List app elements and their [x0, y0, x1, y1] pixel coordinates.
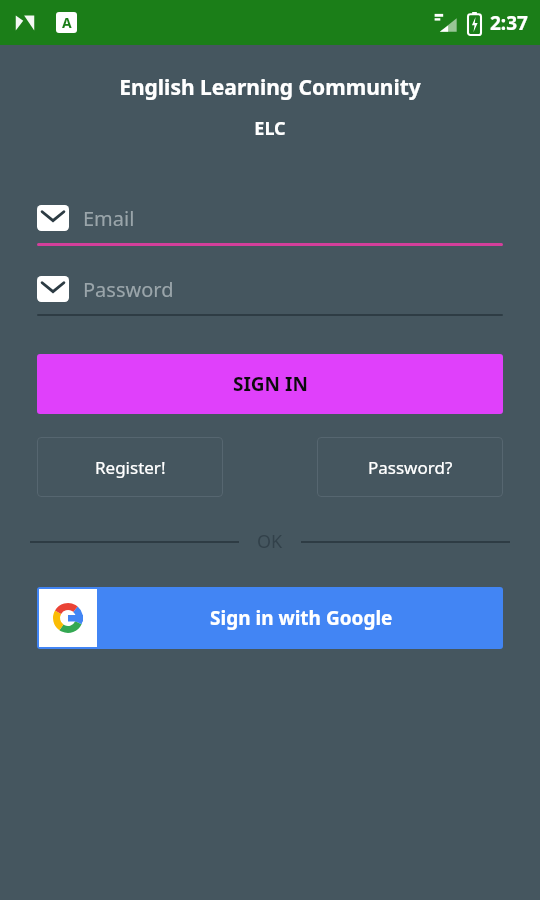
other: Password: [37, 276, 69, 302]
staticText: 2:37: [490, 10, 528, 36]
staticText: Password?: [368, 456, 453, 479]
staticText: Password: [83, 276, 174, 303]
staticText: Email: [83, 205, 135, 232]
button[interactable]: SIGN IN: [37, 354, 503, 414]
staticText: A: [62, 13, 72, 32]
staticText: SIGN IN: [233, 371, 308, 397]
other: Email: [37, 205, 69, 231]
staticText: English Learning Community: [0, 73, 540, 102]
staticText: Sign in with Google: [210, 605, 393, 631]
button[interactable]: Sign in with Google: [37, 587, 503, 649]
button[interactable]: Register!: [37, 437, 223, 497]
button[interactable]: Email: [37, 197, 503, 239]
button[interactable]: Password: [37, 268, 503, 310]
staticText: ELC: [0, 116, 540, 141]
button[interactable]: Password?: [317, 437, 503, 497]
staticText: OK: [257, 529, 283, 554]
staticText: Register!: [95, 456, 166, 479]
